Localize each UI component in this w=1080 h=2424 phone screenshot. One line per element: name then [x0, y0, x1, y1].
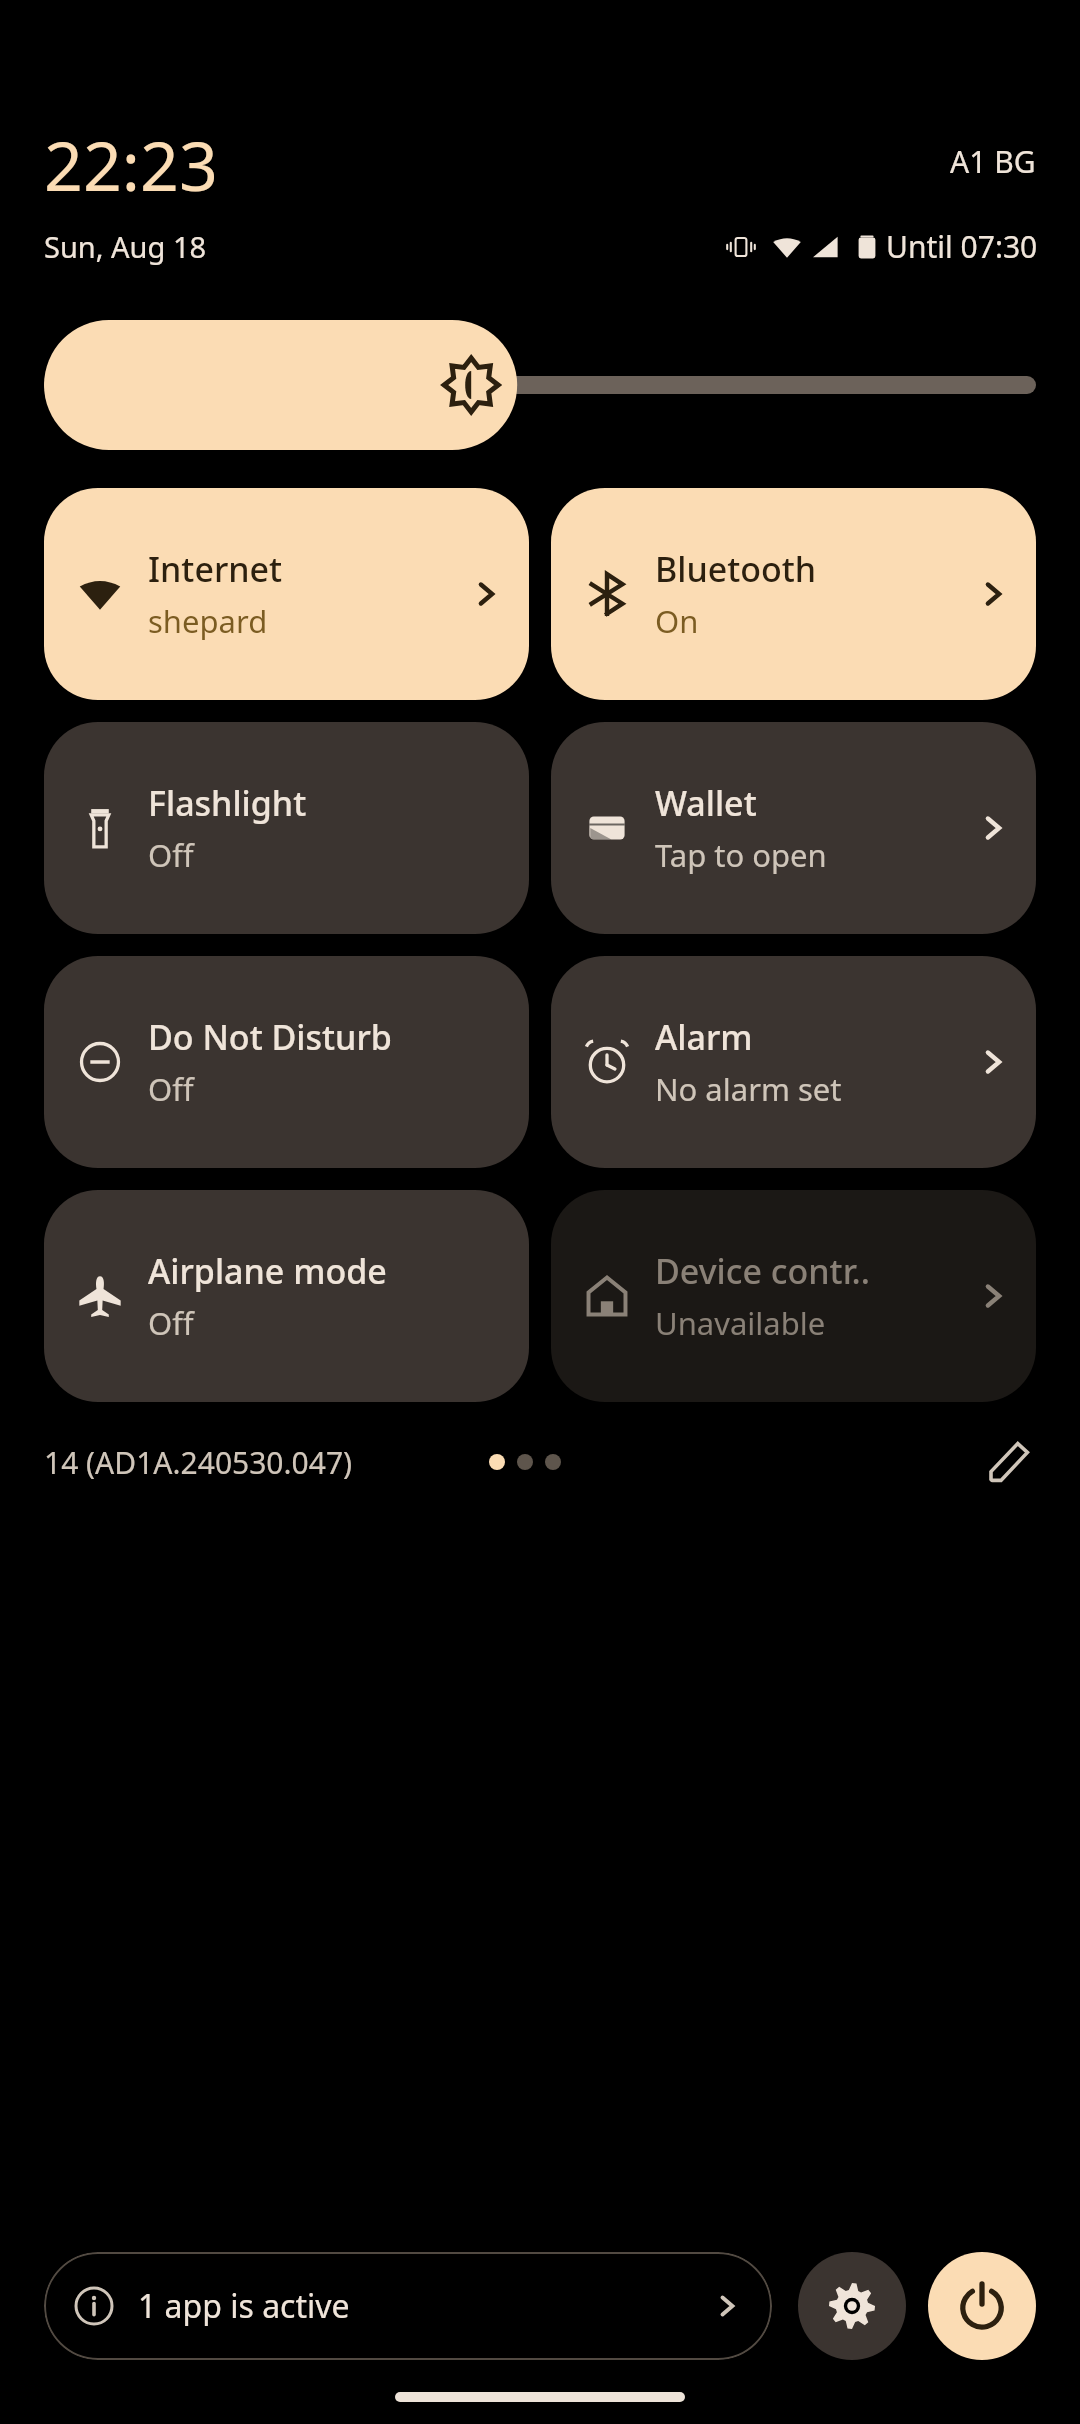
button[interactable]: Brightness [44, 320, 1036, 450]
button[interactable]: Device contr.. [551, 1190, 1036, 1402]
button[interactable]: Edit tiles [982, 1435, 1036, 1489]
button[interactable]: Wallet [551, 722, 1036, 934]
staticText: Off [148, 1302, 194, 1344]
staticText: Tap to open [655, 834, 827, 876]
button[interactable]: 1 app is active [44, 2252, 772, 2360]
button[interactable]: Settings [798, 2252, 906, 2360]
staticText: Off [148, 834, 194, 876]
staticText: Bluetooth [655, 546, 817, 592]
staticText: 14 (AD1A.240530.047) [44, 1442, 353, 1483]
staticText: 1 app is active [138, 2284, 712, 2328]
staticText: Unavailable [655, 1302, 826, 1344]
button[interactable]: Power [928, 2252, 1036, 2360]
staticText: Sun, Aug 18 [44, 227, 207, 266]
staticText: 22:23 [44, 118, 218, 204]
button[interactable]: Do Not Disturb [44, 956, 529, 1168]
button[interactable]: Flashlight [44, 722, 529, 934]
staticText: No alarm set [655, 1068, 842, 1110]
button[interactable]: Internet [44, 488, 529, 700]
staticText: Airplane mode [148, 1248, 387, 1294]
staticText: shepard [148, 600, 268, 642]
staticText: Do Not Disturb [148, 1014, 392, 1060]
staticText: Off [148, 1068, 194, 1110]
staticText: Alarm [655, 1014, 753, 1060]
button[interactable]: Alarm [551, 956, 1036, 1168]
button[interactable]: Airplane mode [44, 1190, 529, 1402]
staticText: Wallet [655, 780, 757, 826]
staticText: On [655, 600, 699, 642]
staticText: Device contr.. [655, 1248, 871, 1294]
staticText: Flashlight [148, 780, 307, 826]
staticText: Until 07:30 [886, 226, 1038, 267]
staticText: Internet [148, 546, 283, 592]
button[interactable]: Bluetooth [551, 488, 1036, 700]
staticText: A1 BG [950, 141, 1036, 182]
